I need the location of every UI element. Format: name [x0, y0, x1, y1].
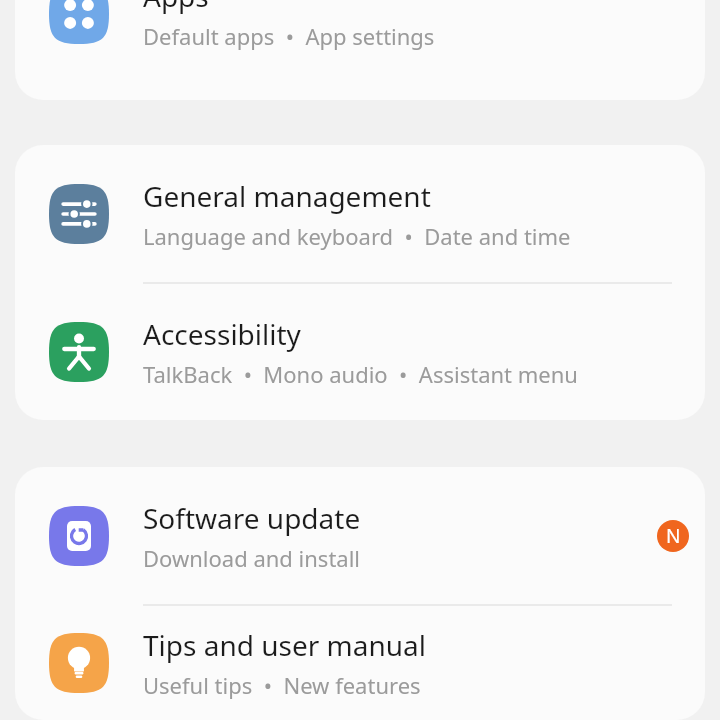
- staticText: N: [666, 523, 681, 549]
- other: Accessibility: [15, 322, 143, 382]
- other: General management: [15, 184, 143, 244]
- other: Tips and user manual: [15, 633, 143, 693]
- staticText: Accessibility: [143, 315, 301, 353]
- staticText: Language and keyboard • Date and time: [143, 221, 571, 251]
- staticText: Useful tips • New features: [143, 670, 421, 700]
- staticText: General management: [143, 177, 431, 215]
- staticText: Software update: [143, 499, 361, 537]
- staticText: TalkBack • Mono audio • Assistant menu: [143, 359, 578, 389]
- other: Apps: [15, 0, 143, 44]
- button[interactable]: Tips and user manual: [15, 606, 705, 720]
- staticText: Default apps • App settings: [143, 21, 435, 51]
- button[interactable]: Apps: [15, 0, 705, 64]
- button[interactable]: Accessibility: [15, 284, 705, 420]
- button[interactable]: Software update: [15, 467, 705, 604]
- staticText: Tips and user manual: [143, 626, 426, 664]
- other: Software update: [15, 506, 143, 566]
- staticText: Apps: [143, 0, 209, 15]
- button[interactable]: General management: [15, 145, 705, 282]
- staticText: Download and install: [143, 543, 361, 573]
